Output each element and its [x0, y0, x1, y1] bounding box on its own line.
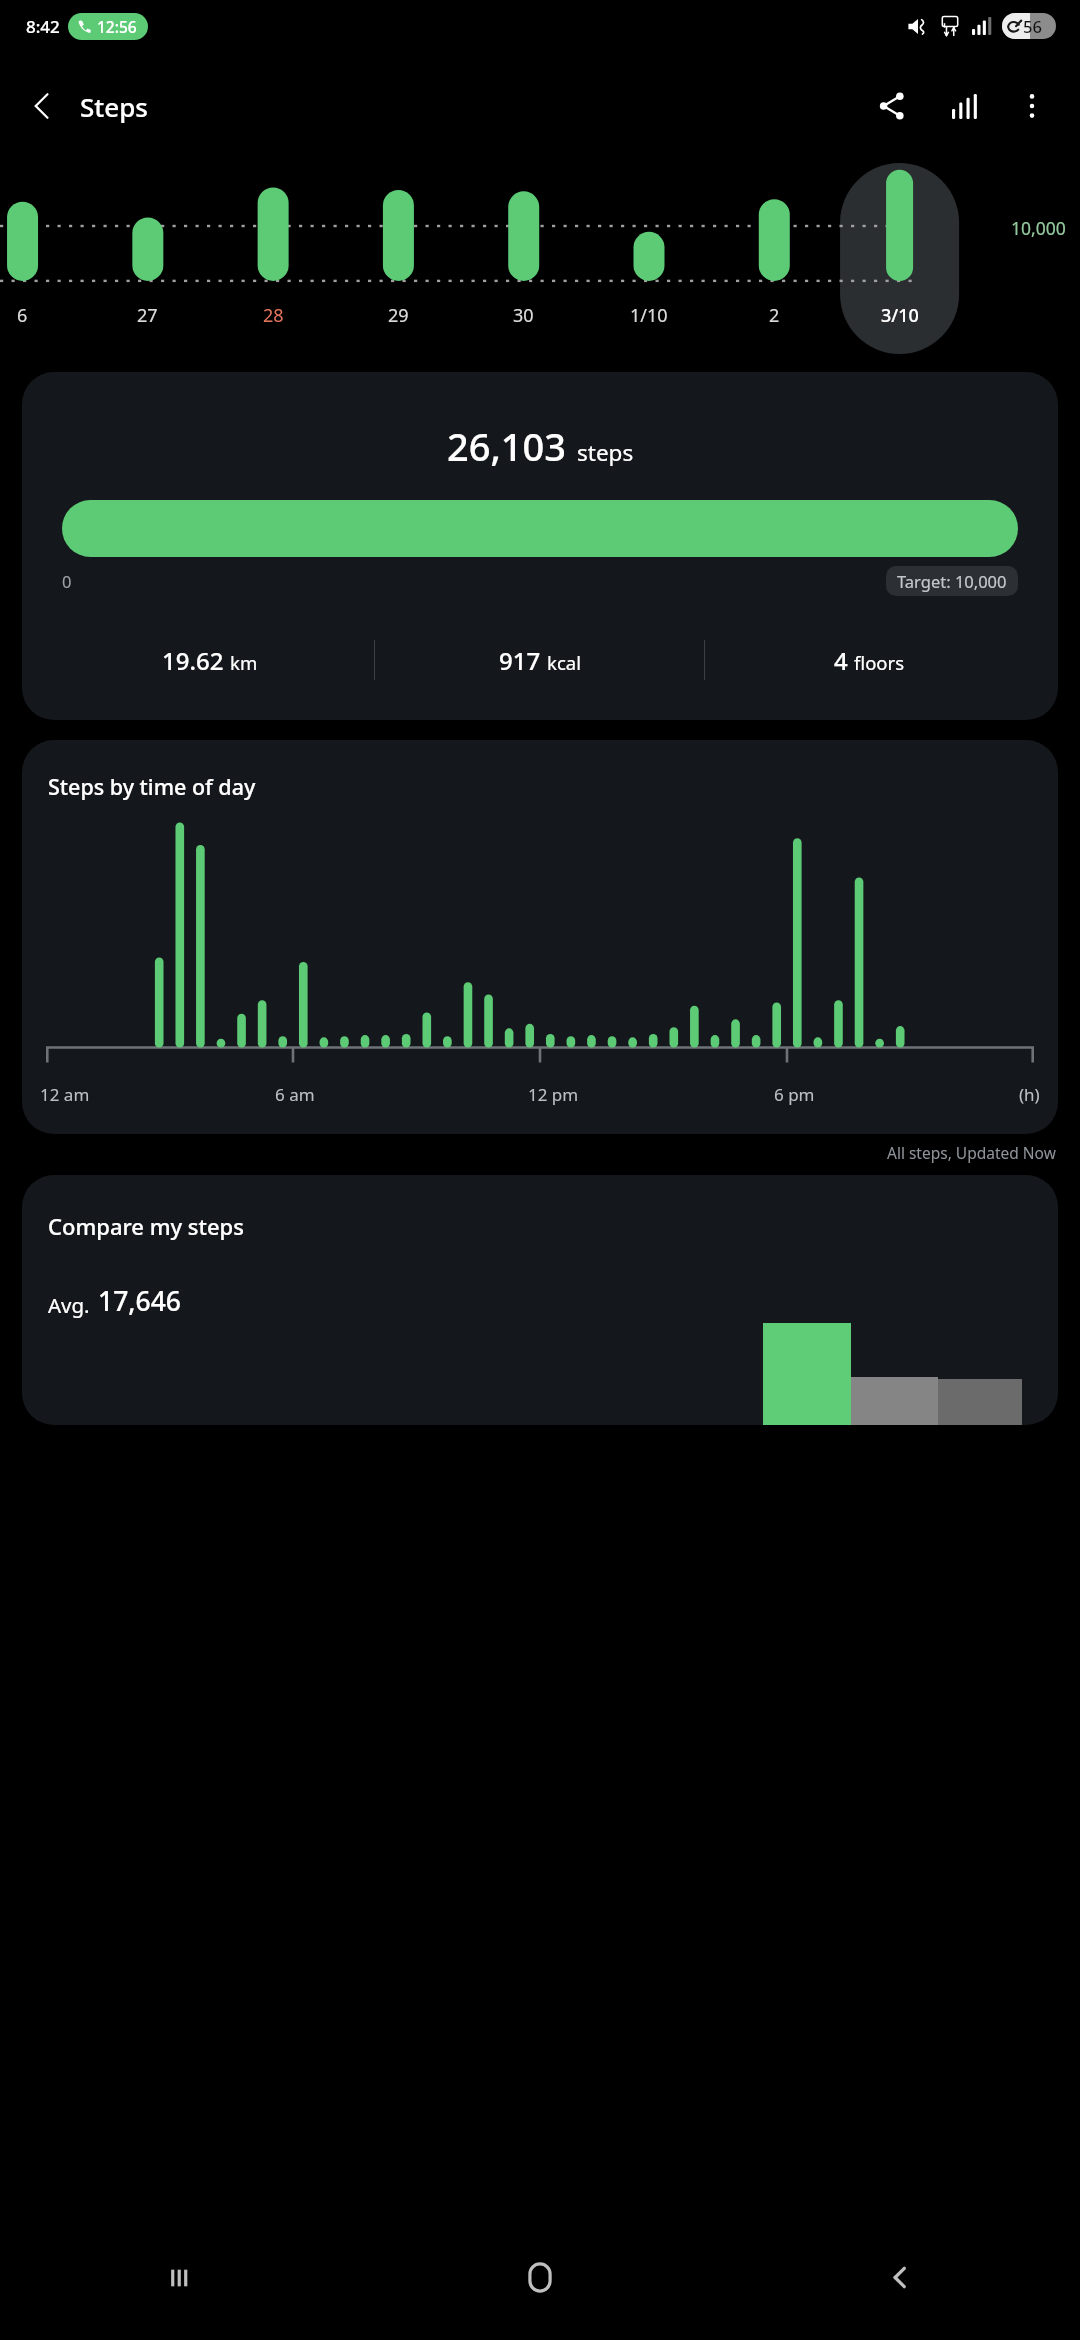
staticText: 12 am	[40, 1083, 90, 1106]
button[interactable]: More options	[1002, 76, 1062, 136]
staticText: 29	[388, 303, 409, 328]
staticText: 26,103	[447, 420, 567, 472]
button[interactable]: Back	[720, 2215, 1080, 2340]
staticText: 6	[17, 303, 28, 328]
staticText: All steps, Updated Now	[887, 1142, 1056, 1163]
staticText: 28	[263, 303, 284, 328]
staticText: 17,646	[98, 1283, 182, 1319]
staticText: 4	[834, 644, 848, 677]
staticText: 1/10	[630, 303, 668, 328]
staticText: 12:56	[97, 16, 137, 37]
staticText: 27	[137, 303, 158, 328]
staticText: 6 pm	[774, 1083, 815, 1106]
staticText: 917	[499, 644, 541, 677]
staticText: 6 am	[275, 1083, 315, 1106]
staticText: Compare my steps	[48, 1211, 244, 1241]
staticText: 30	[513, 303, 534, 328]
staticText: 0	[62, 570, 72, 592]
button[interactable]: Back	[12, 75, 74, 137]
staticText: 12 pm	[528, 1083, 579, 1106]
staticText: (h)	[1019, 1083, 1040, 1106]
staticText: floors	[854, 650, 905, 675]
button[interactable]: Recent apps	[0, 2215, 360, 2340]
staticText: 10,000	[1011, 216, 1066, 240]
staticText: kcal	[547, 650, 581, 675]
staticText: Steps by time of day	[48, 772, 256, 801]
staticText: 19.62	[162, 644, 224, 677]
staticText: 3/10	[881, 303, 919, 328]
button[interactable]: Compare my steps	[22, 1175, 1058, 1425]
button[interactable]: 26,103	[22, 372, 1058, 720]
staticText: Avg.	[48, 1291, 90, 1319]
button[interactable]: Home	[360, 2215, 720, 2340]
staticText: km	[230, 650, 258, 675]
staticText: Steps	[80, 89, 148, 124]
staticText: 8:42	[26, 15, 60, 38]
staticText: steps	[577, 437, 634, 468]
button[interactable]: Share	[862, 76, 922, 136]
button[interactable]: Steps by time of day	[22, 740, 1058, 1134]
staticText: 56	[1023, 15, 1042, 37]
staticText: Target: 10,000	[897, 570, 1007, 592]
staticText: 2	[769, 303, 780, 328]
button[interactable]: View chart	[934, 76, 994, 136]
